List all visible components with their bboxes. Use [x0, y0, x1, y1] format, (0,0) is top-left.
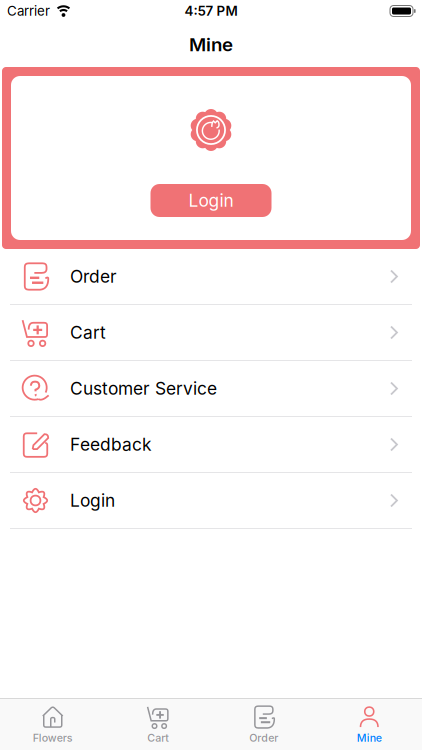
button[interactable]: Mine — [316, 700, 422, 749]
button[interactable]: Order — [0, 249, 422, 304]
button[interactable]: Flowers — [0, 700, 105, 749]
staticText: Customer Service — [70, 378, 217, 399]
button[interactable]: Login — [150, 184, 271, 217]
button[interactable]: Cart — [0, 305, 422, 360]
button[interactable]: Customer Service — [0, 361, 422, 416]
staticText: Cart — [147, 732, 169, 744]
button[interactable]: Order — [211, 700, 316, 749]
staticText: Order — [249, 732, 278, 744]
staticText: Flowers — [33, 732, 73, 744]
button[interactable]: Cart — [105, 700, 211, 749]
button[interactable]: Feedback — [0, 417, 422, 472]
staticText: Mine — [189, 33, 233, 55]
staticText: Carrier — [7, 3, 50, 19]
staticText: 4:57 PM — [184, 3, 237, 19]
button[interactable]: Login — [0, 473, 422, 528]
staticText: Login — [188, 190, 233, 211]
staticText: Cart — [70, 322, 106, 343]
staticText: Feedback — [70, 434, 152, 455]
staticText: Order — [70, 266, 117, 287]
staticText: Mine — [357, 732, 382, 744]
staticText: Login — [70, 490, 115, 511]
